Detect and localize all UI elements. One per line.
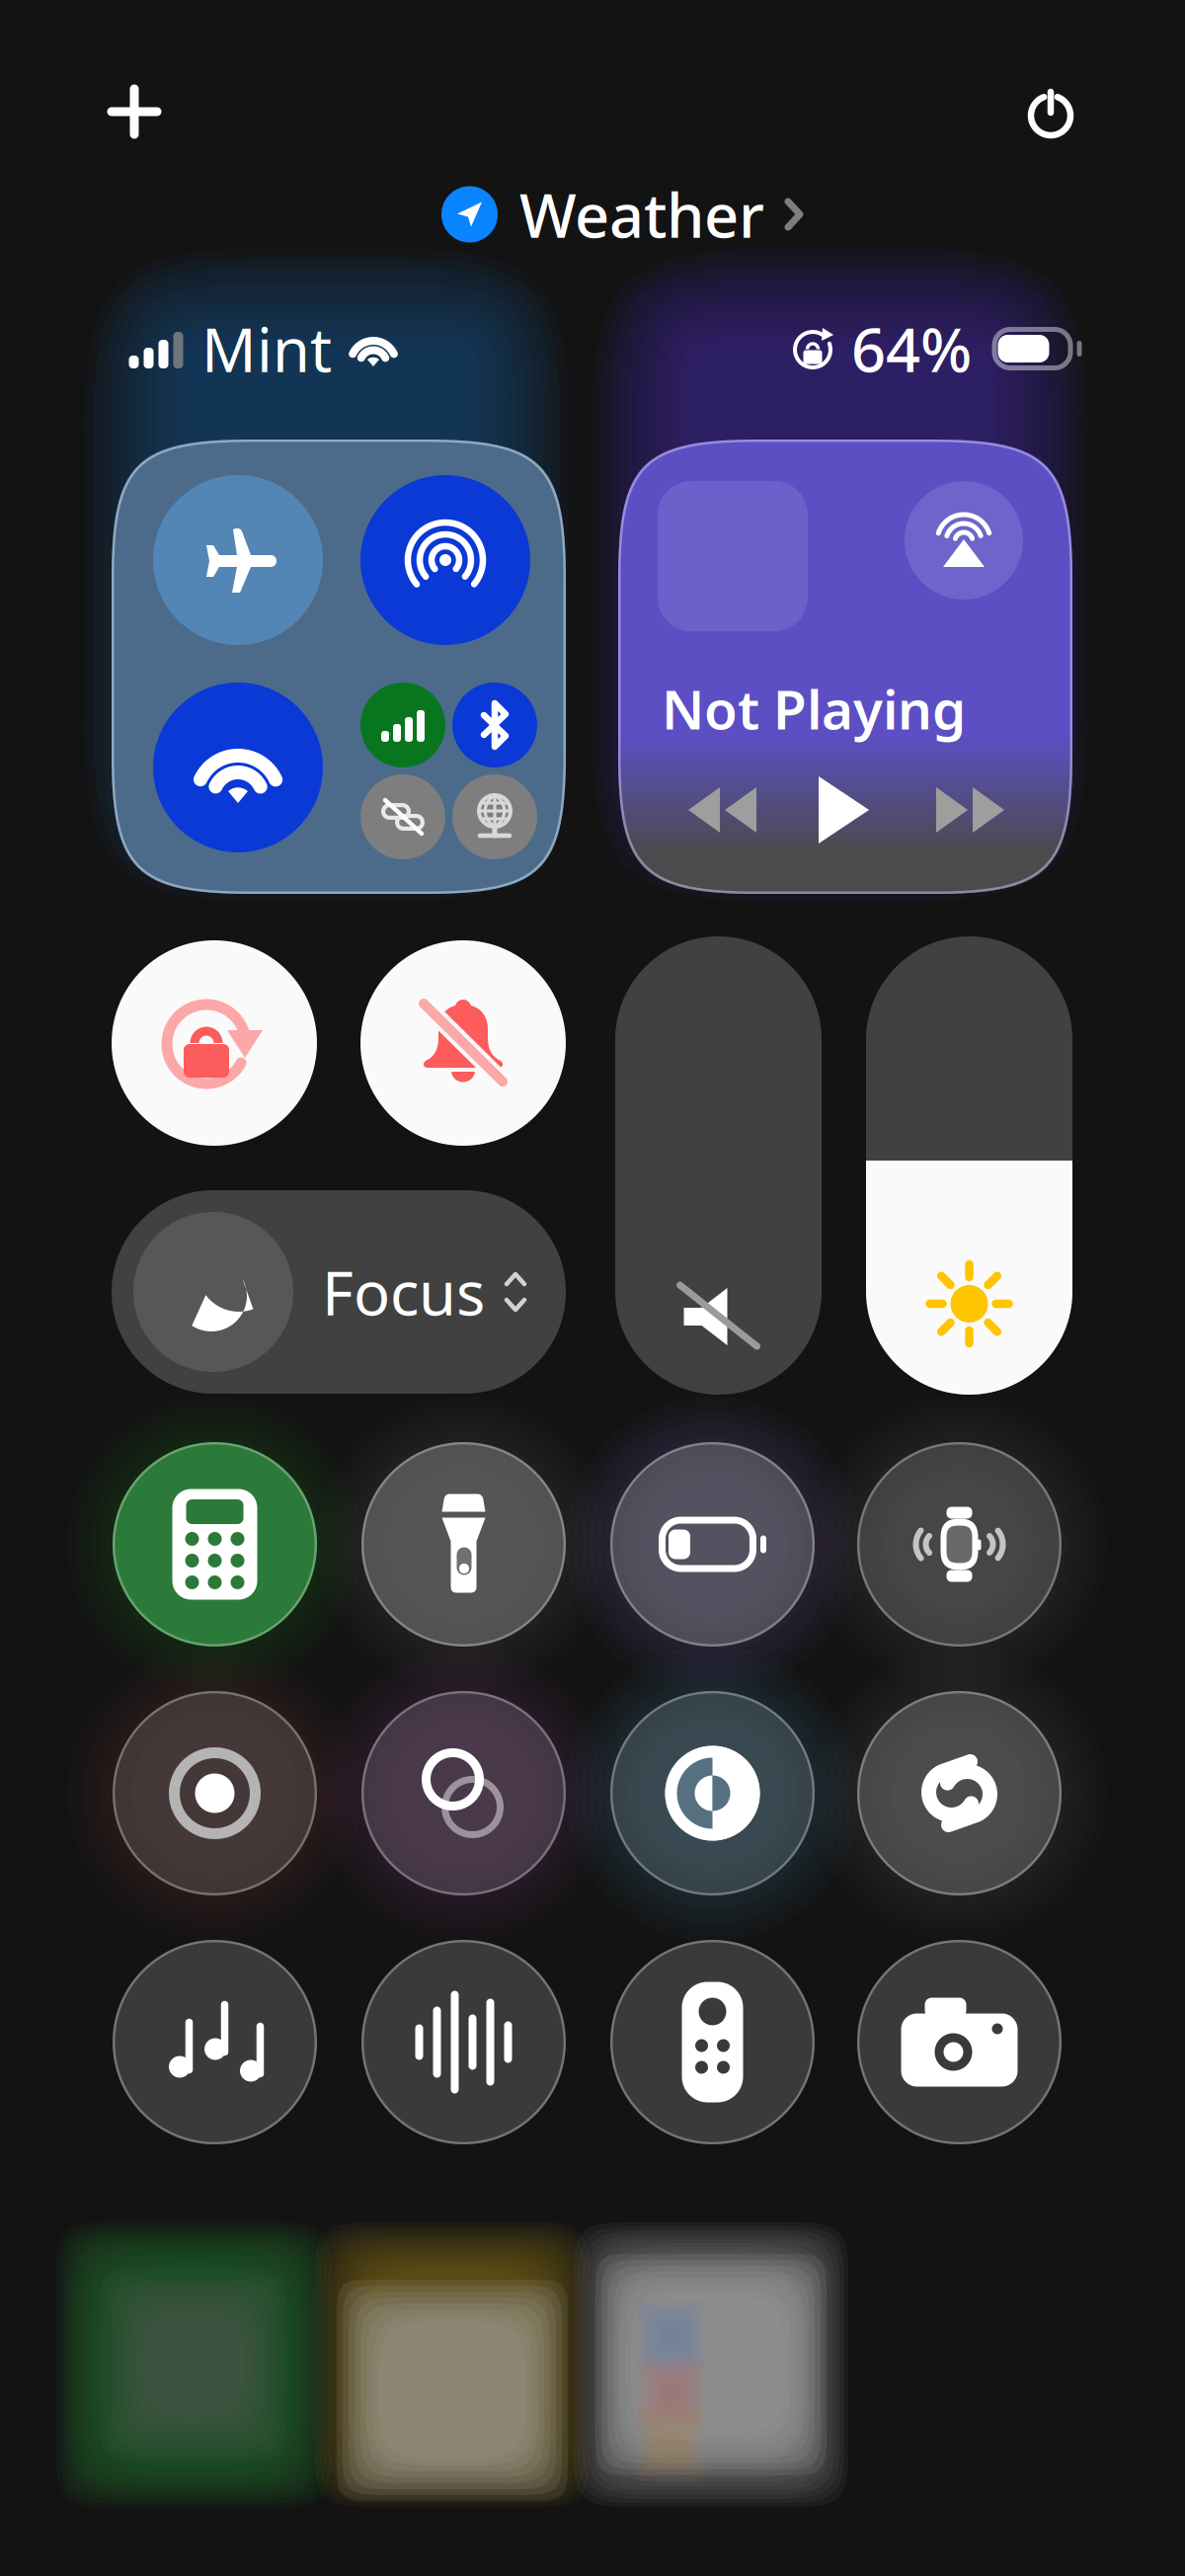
button[interactable]: Rewind bbox=[687, 783, 758, 837]
staticText: Not Playing bbox=[662, 673, 966, 744]
button[interactable]: Add a Control bbox=[107, 84, 162, 139]
button[interactable]: Screen Recording bbox=[113, 1691, 317, 1895]
button[interactable]: Satellite bbox=[360, 774, 445, 859]
button[interactable]: Wi-Fi bbox=[153, 683, 323, 852]
staticText: 64% bbox=[851, 308, 972, 389]
button[interactable]: Calculator bbox=[113, 1442, 317, 1647]
staticText: Mint bbox=[201, 308, 332, 389]
button[interactable]: Voice Memos bbox=[361, 1940, 566, 2144]
button[interactable]: VPN bbox=[452, 774, 537, 859]
button[interactable]: Dark Mode bbox=[610, 1691, 815, 1895]
button[interactable]: Power Off bbox=[1023, 84, 1078, 139]
button[interactable]: Camera bbox=[857, 1940, 1062, 2144]
staticText: Weather bbox=[519, 174, 764, 255]
button[interactable]: Volume bbox=[615, 936, 822, 1395]
button[interactable]: Flashlight bbox=[361, 1442, 566, 1647]
button[interactable]: Airplane Mode bbox=[153, 475, 323, 645]
button[interactable]: Low Power Mode bbox=[610, 1442, 815, 1647]
button[interactable]: Focus bbox=[112, 1190, 566, 1394]
button[interactable]: Play bbox=[814, 773, 873, 846]
button[interactable]: AirDrop bbox=[360, 475, 530, 645]
button[interactable]: Rotation Lock bbox=[112, 940, 317, 1146]
button[interactable]: AirPlay bbox=[905, 481, 1023, 600]
button[interactable]: Weather bbox=[441, 184, 804, 245]
button[interactable]: Apple TV Remote bbox=[610, 1940, 815, 2144]
button[interactable]: Fast Forward bbox=[934, 783, 1005, 837]
button[interactable]: Cellular Data bbox=[360, 683, 445, 767]
staticText: Focus bbox=[322, 1252, 485, 1332]
button[interactable]: Music Recognition bbox=[113, 1940, 317, 2144]
button[interactable]: Ping My Watch bbox=[857, 1442, 1062, 1647]
button[interactable]: Screen Mirroring bbox=[361, 1691, 566, 1895]
button[interactable]: Brightness bbox=[866, 936, 1072, 1395]
button[interactable]: Bluetooth bbox=[452, 683, 537, 767]
button[interactable]: Shazam bbox=[857, 1691, 1062, 1895]
button[interactable]: Silent Mode bbox=[360, 940, 566, 1146]
